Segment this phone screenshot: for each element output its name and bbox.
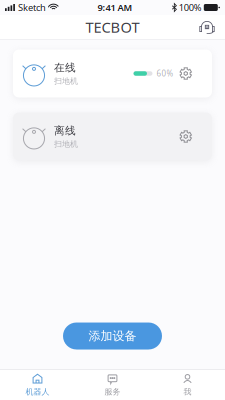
staticText: 在线 bbox=[54, 61, 76, 74]
staticText: 添加设备 bbox=[88, 329, 136, 343]
staticText: 离线 bbox=[54, 124, 76, 137]
button[interactable]: 在线 bbox=[13, 49, 212, 97]
staticText: 机器人 bbox=[25, 387, 49, 397]
button[interactable]: 服务 bbox=[75, 370, 150, 400]
staticText: 我 bbox=[183, 387, 191, 397]
staticText: 扫地机 bbox=[54, 139, 78, 149]
staticText: TECBOT bbox=[85, 17, 139, 37]
staticText: 扫地机 bbox=[54, 76, 78, 86]
staticText: 9:41 AM bbox=[97, 1, 132, 14]
staticText: 100% bbox=[179, 1, 202, 14]
button[interactable]: 机器人 bbox=[0, 370, 75, 400]
button[interactable]: 离线 bbox=[13, 112, 212, 160]
staticText: Sketch bbox=[18, 1, 46, 14]
staticText: 60% bbox=[156, 68, 173, 79]
button[interactable]: 添加设备 bbox=[63, 322, 162, 349]
staticText: 服务 bbox=[104, 387, 120, 397]
button[interactable]: Customer service bbox=[194, 15, 220, 39]
button[interactable]: 我 bbox=[150, 370, 225, 400]
